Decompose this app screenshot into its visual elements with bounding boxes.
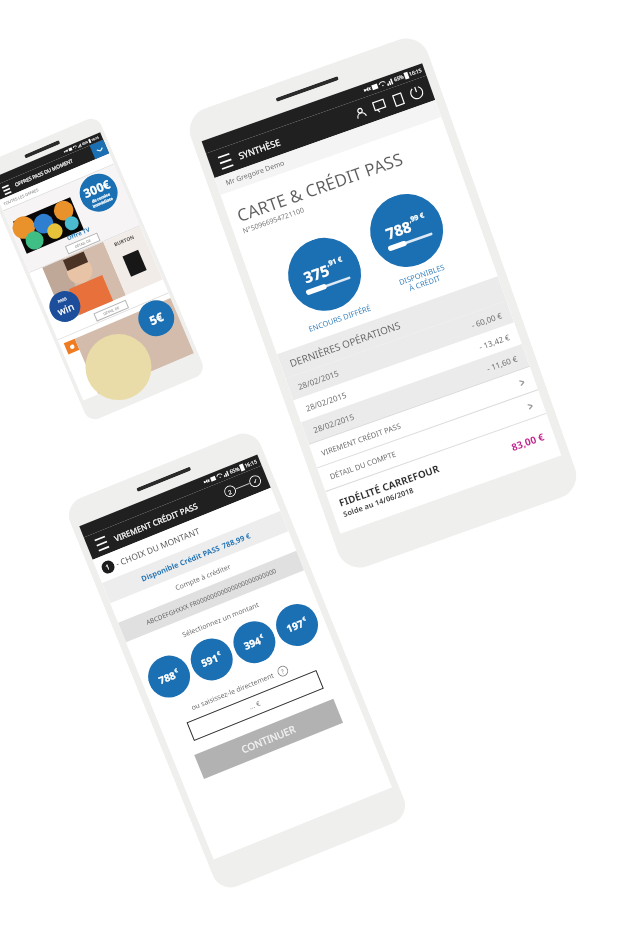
staticText: ,99 € <box>407 210 426 225</box>
button[interactable]: Help <box>276 664 290 678</box>
staticText: 591 <box>199 650 221 670</box>
button[interactable]: VIREMENT CRÉDIT PASS <box>309 367 538 467</box>
staticText: ENCOURS DIFFÉRÉ <box>307 303 372 334</box>
button[interactable]: 197 <box>270 598 324 652</box>
staticText: DÉTAIL DE <box>74 238 91 249</box>
button[interactable]: 28/02/2015 <box>301 344 529 444</box>
staticText: - CHOIX DU MONTANT <box>114 525 202 570</box>
staticText: 16:15 <box>244 458 258 470</box>
staticText: 788 <box>156 667 178 687</box>
staticText: 16:15 <box>408 67 423 78</box>
staticText: € <box>301 614 307 622</box>
staticText: N°50966954721100 <box>241 205 306 236</box>
button[interactable]: ABCDEFGHXXX FR00000000000000000000000 <box>118 551 304 642</box>
staticText: 65% <box>229 465 241 476</box>
staticText: TOUTES LES OFFRES <box>3 187 39 207</box>
staticText: - 13,42 € <box>477 331 511 352</box>
staticText: 300€ <box>81 175 113 201</box>
staticText: € <box>173 666 179 674</box>
staticText: 394 <box>242 633 263 653</box>
button[interactable]: Open navigation menu <box>0 182 14 197</box>
staticText: Mr Gregoire Demo <box>224 158 286 188</box>
staticText: de remise immédiate <box>90 191 114 209</box>
button[interactable]: Open navigation menu <box>212 148 238 174</box>
staticText: DISPONIBLES À CRÉDIT <box>397 262 449 296</box>
button[interactable]: Documents <box>385 87 411 112</box>
button[interactable]: Filter offers <box>89 140 109 159</box>
staticText: 788,99 € <box>220 530 252 551</box>
staticText: ... € <box>248 699 263 712</box>
staticText: 16:15 <box>91 135 100 142</box>
button[interactable]: 394 <box>227 615 282 669</box>
staticText: ,91 € <box>325 254 344 269</box>
staticText: ✓ <box>252 477 259 485</box>
button[interactable]: Log out <box>404 80 429 105</box>
button[interactable]: DÉTAIL DU COMPTE <box>317 390 546 491</box>
staticText: 5€ <box>147 308 166 328</box>
staticText: BURTON <box>113 233 136 248</box>
staticText: OFFRES PASS DU MOMENT <box>14 157 74 188</box>
staticText: - 60,00 € <box>470 309 503 330</box>
button[interactable]: DÉTAIL DE <box>93 300 129 322</box>
staticText: PASS <box>57 296 68 304</box>
staticText: Compte à créditer <box>174 562 233 593</box>
staticText: Solde au 14/06/2018 <box>342 485 416 519</box>
button[interactable]: 591 <box>184 632 239 687</box>
button[interactable]: Account <box>347 100 373 125</box>
staticText: ABCDEFGHXXX FR00000000000000000000000 <box>145 566 278 627</box>
staticText: ? <box>280 667 286 676</box>
staticText: SYNTHÈSE <box>237 135 282 161</box>
staticText: VIREMENT CRÉDIT PASS <box>112 500 200 544</box>
staticText: 197 <box>284 616 306 635</box>
staticText: CARTE & CRÉDIT PASS <box>234 147 406 227</box>
staticText: € <box>216 649 222 657</box>
staticText: VIREMENT CRÉDIT PASS <box>320 420 402 458</box>
button[interactable]: Messages <box>366 93 392 119</box>
staticText: DÉTAIL DE <box>102 305 120 316</box>
staticText: 28/02/2015 <box>296 367 340 392</box>
button[interactable]: DÉTAIL DE <box>65 232 100 254</box>
staticText: 2 <box>227 488 233 496</box>
button[interactable]: 2 <box>222 483 238 499</box>
button[interactable]: 1 <box>93 488 280 583</box>
button[interactable]: ... € <box>186 670 324 741</box>
staticText: CONTINUER <box>239 721 298 756</box>
button[interactable]: 28/02/2015 <box>293 322 522 422</box>
staticText: DERNIÈRES OPÉRATIONS <box>287 318 402 370</box>
staticText: Sélectionnez un montant <box>181 600 261 640</box>
button[interactable]: CONTINUER <box>194 699 343 779</box>
staticText: 83,00 € <box>509 429 547 454</box>
staticText: € <box>258 631 265 639</box>
button[interactable]: 28/02/2015 <box>286 301 514 400</box>
staticText: 28/02/2015 <box>312 410 356 435</box>
staticText: 65% <box>82 140 89 146</box>
staticText: 28/02/2015 <box>304 389 348 413</box>
button[interactable]: 300€ <box>3 165 140 272</box>
button[interactable]: 788 <box>142 649 196 704</box>
button[interactable]: Open navigation menu <box>89 531 114 556</box>
button[interactable]: ✓ <box>247 473 263 489</box>
staticText: 65% <box>393 73 405 83</box>
staticText: win <box>55 299 76 318</box>
staticText: FIDÉLITÉ CARREFOUR <box>337 461 441 510</box>
staticText: Offre TV <box>65 225 92 242</box>
staticText: DÉTAIL DU COMPTE <box>328 449 398 481</box>
staticText: ou saisissez-le directement <box>190 670 276 713</box>
button[interactable]: 5€ <box>58 293 194 400</box>
staticText: 788 <box>383 216 414 243</box>
staticText: 1 <box>104 562 112 573</box>
button[interactable]: BURTON <box>30 226 168 339</box>
staticText: Disponible Crédit PASS <box>140 543 221 583</box>
button[interactable]: FIDÉLITÉ CARREFOUR <box>326 414 560 530</box>
staticText: 375 <box>301 260 332 287</box>
staticText: - 11,60 € <box>485 353 519 374</box>
